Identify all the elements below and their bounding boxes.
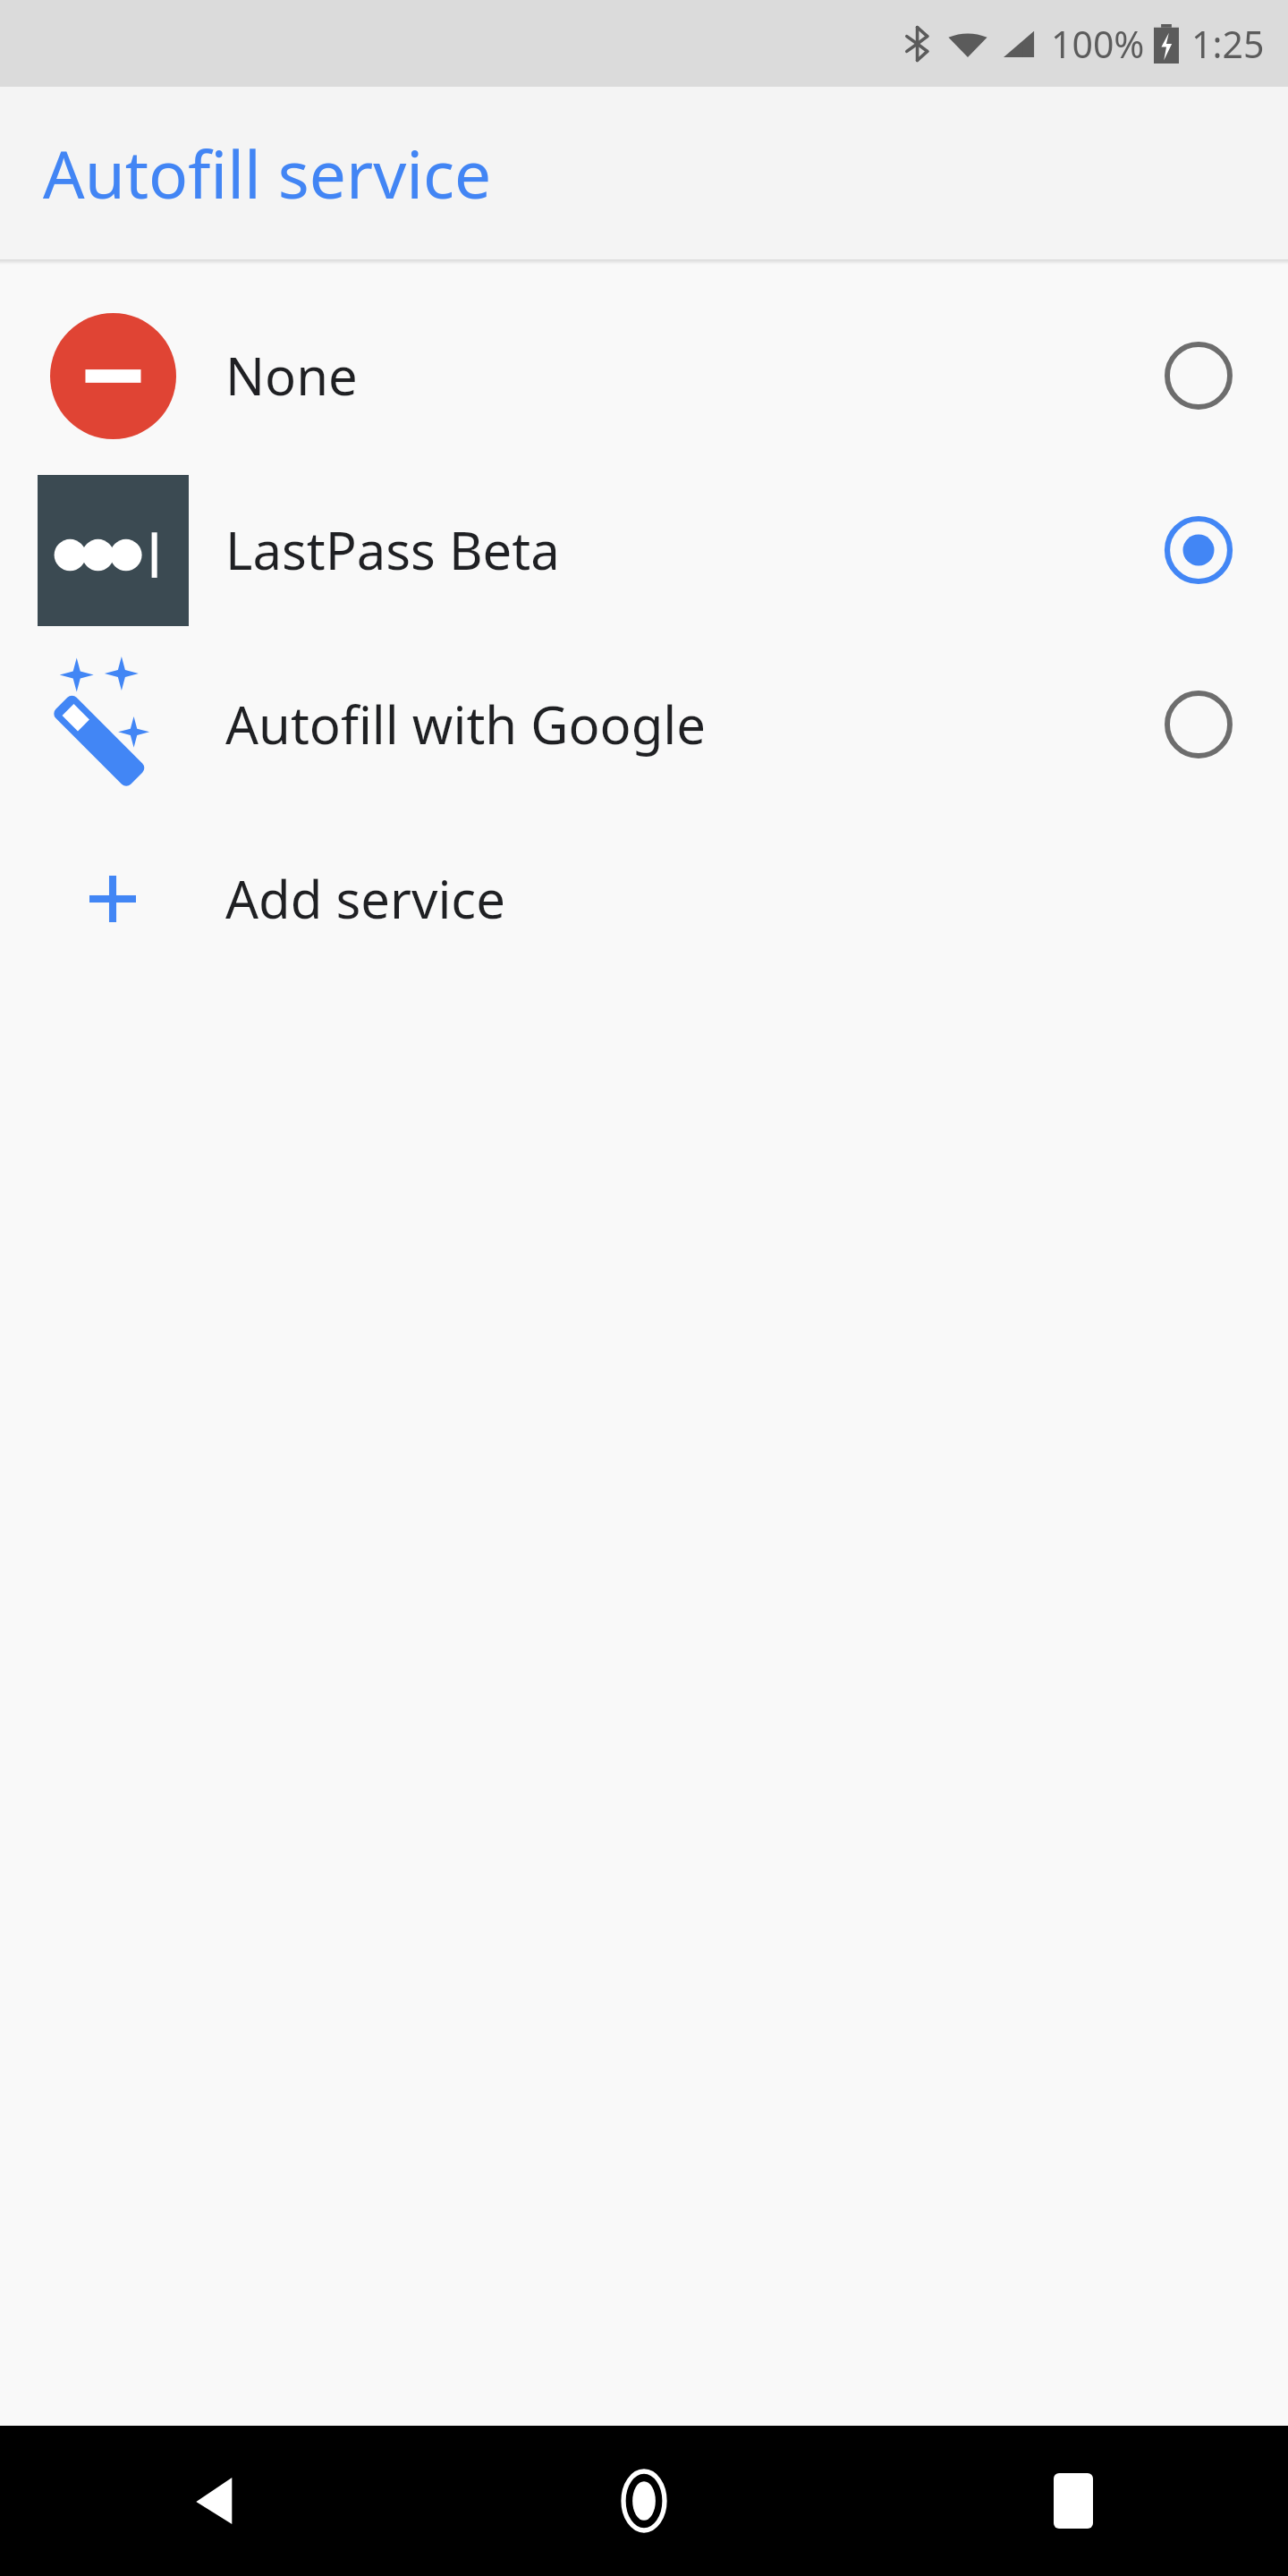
button[interactable]: Autofill with Google <box>0 637 1288 811</box>
button[interactable]: Add service <box>0 811 1288 986</box>
staticText: None <box>225 340 1109 411</box>
button[interactable]: Recent apps <box>859 2426 1288 2576</box>
staticText: 1:25 <box>1191 19 1265 69</box>
staticText: Add service <box>225 863 1109 934</box>
button[interactable]: None <box>0 288 1288 462</box>
staticText: Autofill service <box>43 129 492 217</box>
button[interactable]: Back <box>0 2426 429 2576</box>
staticText: LastPass Beta <box>225 514 1109 585</box>
button[interactable]: LastPass Beta <box>0 462 1288 637</box>
button[interactable]: Home <box>429 2426 859 2576</box>
staticText: 100% <box>1051 19 1145 69</box>
staticText: Autofill with Google <box>225 689 1109 759</box>
